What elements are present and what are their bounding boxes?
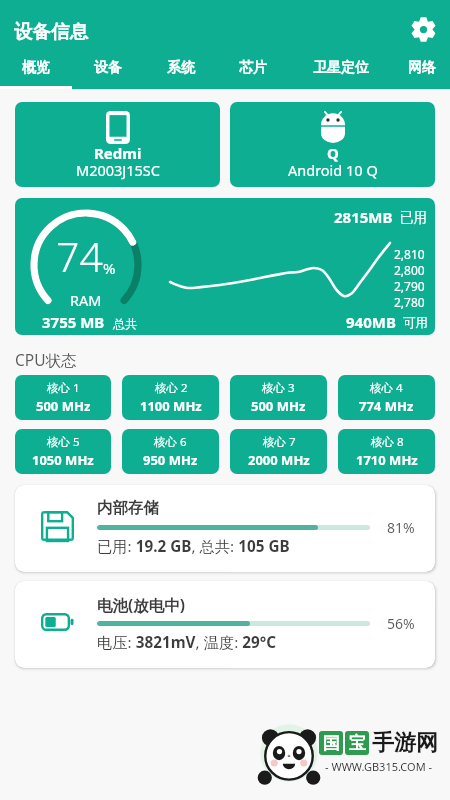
staticText: 2000 MHz — [248, 451, 310, 469]
staticText: RAM — [70, 290, 102, 310]
staticText: 2,790 — [394, 278, 425, 294]
button[interactable]: 卫星定位 — [289, 52, 393, 89]
button[interactable]: 核心 4 — [338, 375, 435, 420]
staticText: 设备信息 — [14, 20, 88, 43]
button[interactable]: 核心 5 — [15, 429, 111, 474]
staticText: 核心 7 — [263, 434, 296, 450]
staticText: 核心 3 — [262, 380, 295, 396]
staticText: 卫星定位 — [313, 59, 369, 77]
staticText: 已用 — [400, 209, 427, 226]
button[interactable]: 系统 — [144, 52, 217, 89]
button[interactable]: 核心 2 — [122, 375, 219, 420]
button[interactable]: 74 — [15, 198, 435, 335]
staticText: CPU状态 — [15, 349, 77, 370]
button[interactable]: 核心 8 — [338, 429, 435, 474]
button[interactable]: 设备 — [72, 52, 144, 89]
staticText: 核心 5 — [47, 434, 80, 450]
staticText: 芯片 — [239, 59, 267, 77]
button[interactable]: 核心 3 — [230, 375, 327, 420]
staticText: 500 MHz — [36, 397, 91, 415]
staticText: 可用 — [403, 315, 428, 331]
button[interactable]: 核心 6 — [122, 429, 219, 474]
button[interactable]: 核心 1 — [15, 375, 111, 420]
button[interactable]: 核心 7 — [230, 429, 327, 474]
staticText: 已用: 19.2 GB, 总共: 105 GB — [97, 536, 290, 557]
staticText: 核心 1 — [47, 380, 80, 396]
staticText: M2003J15SC — [76, 160, 160, 180]
staticText: 总共 — [113, 316, 137, 331]
staticText: 3755 MB — [42, 312, 105, 332]
staticText: - WWW.GB315.COM - — [325, 759, 433, 774]
staticText: 系统 — [167, 59, 195, 77]
button[interactable]: Redmi — [15, 102, 220, 187]
staticText: 500 MHz — [251, 397, 306, 415]
staticText: 774 MHz — [359, 397, 414, 415]
button[interactable]: Settings — [406, 12, 440, 46]
staticText: 74 — [56, 228, 103, 284]
staticText: 2,800 — [394, 262, 425, 278]
staticText: 950 MHz — [143, 451, 198, 469]
staticText: 940MB — [346, 312, 396, 332]
staticText: 2815MB — [334, 207, 393, 227]
staticText: 1050 MHz — [32, 451, 94, 469]
staticText: % — [103, 258, 116, 278]
staticText: 电压: 3821mV, 温度: 29°C — [97, 632, 277, 653]
staticText: 国 — [323, 733, 340, 754]
staticText: 网络 — [408, 59, 436, 77]
button[interactable]: 概览 — [0, 52, 72, 89]
staticText: 1100 MHz — [140, 397, 202, 415]
staticText: 2,780 — [394, 294, 425, 310]
staticText: 手游网 — [372, 729, 438, 757]
staticText: 核心 4 — [370, 380, 403, 396]
staticText: 2,810 — [394, 246, 425, 262]
staticText: Redmi — [94, 143, 142, 163]
staticText: 核心 6 — [154, 434, 187, 450]
staticText: 内部存储 — [97, 498, 159, 518]
staticText: Q — [327, 143, 339, 163]
staticText: 核心 2 — [155, 380, 188, 396]
staticText: 概览 — [22, 59, 50, 77]
button[interactable]: 电池(放电中) — [15, 581, 435, 668]
button[interactable]: Q — [230, 102, 435, 187]
button[interactable]: 芯片 — [217, 52, 289, 89]
staticText: 56% — [387, 614, 415, 633]
staticText: 电池(放电中) — [97, 594, 186, 615]
staticText: 核心 8 — [371, 434, 404, 450]
staticText: 宝 — [349, 733, 366, 754]
staticText: 1710 MHz — [356, 451, 418, 469]
staticText: 设备 — [94, 59, 122, 77]
button[interactable]: 内部存储 — [15, 485, 435, 572]
staticText: Android 10 Q — [288, 160, 378, 180]
staticText: 81% — [387, 518, 415, 537]
button[interactable]: 网络 — [393, 52, 450, 89]
